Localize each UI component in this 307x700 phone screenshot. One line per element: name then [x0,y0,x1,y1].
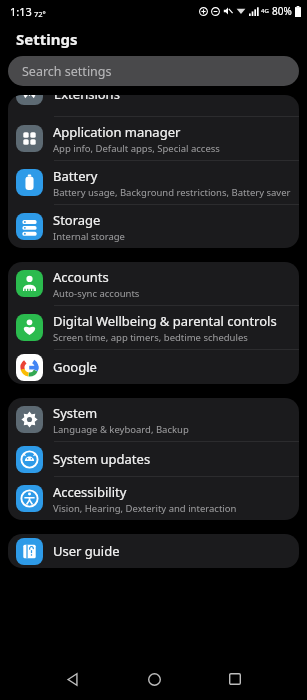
staticText: Accessibility [53,483,127,501]
staticText: Vision, Hearing, Dexterity and interacti… [53,502,237,515]
staticText: Google [53,358,97,376]
button[interactable]: Home [140,665,168,693]
staticText: Storage [53,211,101,229]
button[interactable]: User guide [8,534,299,568]
staticText: App info, Default apps, Special access [53,142,220,155]
button[interactable]: Extensions [8,95,299,116]
staticText: Application manager [53,123,181,141]
button[interactable]: Back [58,665,86,693]
staticText: Internal storage [53,230,125,243]
button[interactable]: System [8,398,299,441]
staticText: Digital Wellbeing & parental controls [53,312,277,330]
staticText: Battery usage, Background restrictions, … [53,186,291,199]
staticText: Screen time, app timers, bedtime schedul… [53,331,248,344]
staticText: 72° [34,9,46,19]
staticText: User guide [53,542,120,560]
staticText: Battery [53,167,98,185]
staticText: 1:13 [10,4,32,19]
button[interactable]: Recent apps [221,665,249,693]
button[interactable]: System updates [8,442,299,476]
staticText: Extensions [54,95,120,103]
staticText: Settings [16,29,78,49]
button[interactable]: Digital Wellbeing & parental controls [8,306,299,349]
button[interactable]: Accounts [8,262,299,305]
staticText: 4G [261,7,269,15]
staticText: 80% [272,4,292,18]
button[interactable]: Search settings [8,56,299,86]
staticText: Search settings [22,63,112,80]
staticText: System [53,404,98,422]
button[interactable]: Google [8,350,299,384]
staticText: Language & keyboard, Backup [53,423,189,436]
staticText: Auto-sync accounts [53,287,140,300]
staticText: Accounts [53,268,109,286]
staticText: System updates [53,450,151,468]
button[interactable]: Application manager [8,117,299,160]
button[interactable]: Storage [8,205,299,248]
button[interactable]: Accessibility [8,477,299,520]
button[interactable]: Battery [8,161,299,204]
